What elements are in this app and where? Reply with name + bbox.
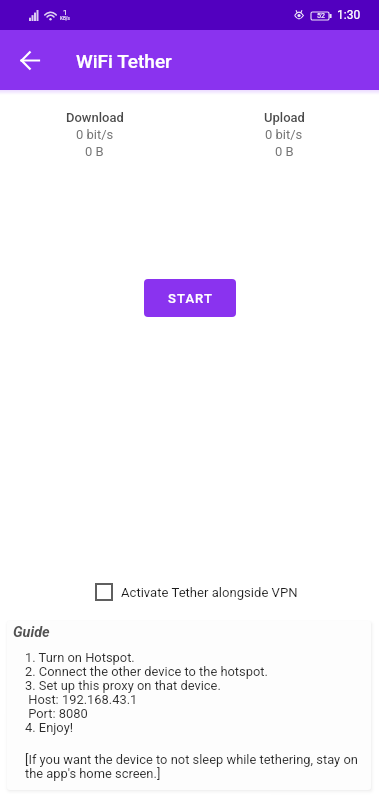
staticText: Activate Tether alongside VPN	[121, 585, 298, 600]
button[interactable]: Activate Tether alongside VPN	[89, 577, 304, 607]
staticText: Guide	[13, 624, 50, 641]
staticText: 52	[317, 12, 325, 20]
staticText: [If you want the device to not sleep whi…	[25, 752, 363, 781]
staticText: Download	[66, 110, 124, 125]
staticText: 0 B	[275, 144, 294, 159]
staticText: 1. Turn on Hotspot. 2. Connect the other…	[25, 650, 268, 735]
staticText: START	[168, 291, 213, 306]
button[interactable]: START	[144, 279, 236, 317]
staticText: WiFi Tether	[76, 50, 172, 72]
staticText: KB/s	[60, 16, 70, 21]
staticText: 0 bit/s	[265, 127, 303, 142]
staticText: 1	[63, 8, 68, 17]
staticText: 0 bit/s	[76, 127, 114, 142]
other: Eye care	[294, 11, 304, 20]
staticText: 1:30	[337, 8, 361, 22]
staticText: 0 B	[85, 144, 104, 159]
staticText: Upload	[264, 110, 305, 125]
button[interactable]: Back	[11, 41, 49, 79]
